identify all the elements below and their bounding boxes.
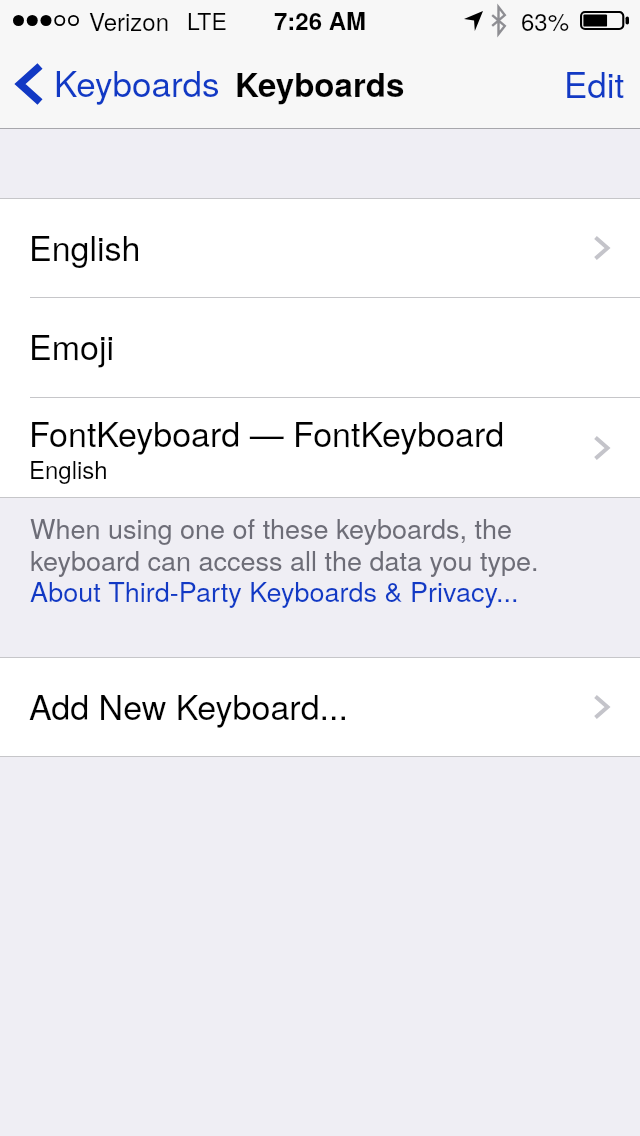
button[interactable]: About Third-Party Keyboards & Privacy...	[30, 571, 519, 610]
button[interactable]: Edit	[548, 58, 640, 108]
staticText: FontKeyboard — FontKeyboard	[29, 408, 505, 457]
button[interactable]: English	[0, 199, 640, 297]
staticText: Keyboards	[54, 57, 220, 107]
other: Location	[464, 11, 483, 31]
button[interactable]: Add New Keyboard...	[0, 658, 640, 756]
other: Bluetooth	[491, 7, 506, 34]
staticText: Verizon	[89, 3, 170, 37]
staticText: 7:26 AM	[274, 3, 367, 37]
staticText: English	[29, 451, 108, 485]
button[interactable]: Keyboards	[0, 57, 230, 107]
staticText: keyboard can access all the data you typ…	[30, 540, 539, 579]
staticText: Edit	[564, 58, 625, 108]
staticText: When using one of these keyboards, the	[30, 508, 512, 547]
staticText: Add New Keyboard...	[29, 681, 348, 730]
other: Battery 63 percent	[580, 11, 629, 30]
staticText: About Third-Party Keyboards & Privacy...	[30, 571, 519, 610]
staticText: 63%	[521, 3, 570, 37]
staticText: LTE	[187, 4, 227, 37]
button[interactable]: FontKeyboard — FontKeyboard	[0, 398, 640, 497]
staticText: English	[29, 222, 141, 271]
staticText: Keyboards	[235, 60, 405, 107]
staticText: Emoji	[29, 321, 114, 370]
button[interactable]: Emoji	[0, 298, 640, 397]
